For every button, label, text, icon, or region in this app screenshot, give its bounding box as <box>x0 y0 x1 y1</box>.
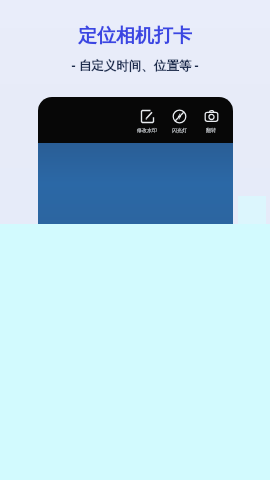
button[interactable]: Flip camera <box>197 107 225 133</box>
button[interactable]: Flash <box>165 107 193 133</box>
button[interactable]: Edit watermark <box>133 107 161 133</box>
staticText: 定位相机打卡 <box>78 24 192 48</box>
staticText: 闪光灯 <box>172 127 187 133</box>
staticText: 翻转 <box>206 127 216 133</box>
staticText: 修改水印 <box>137 127 157 133</box>
staticText: - 自定义时间、位置等 - <box>71 57 199 74</box>
